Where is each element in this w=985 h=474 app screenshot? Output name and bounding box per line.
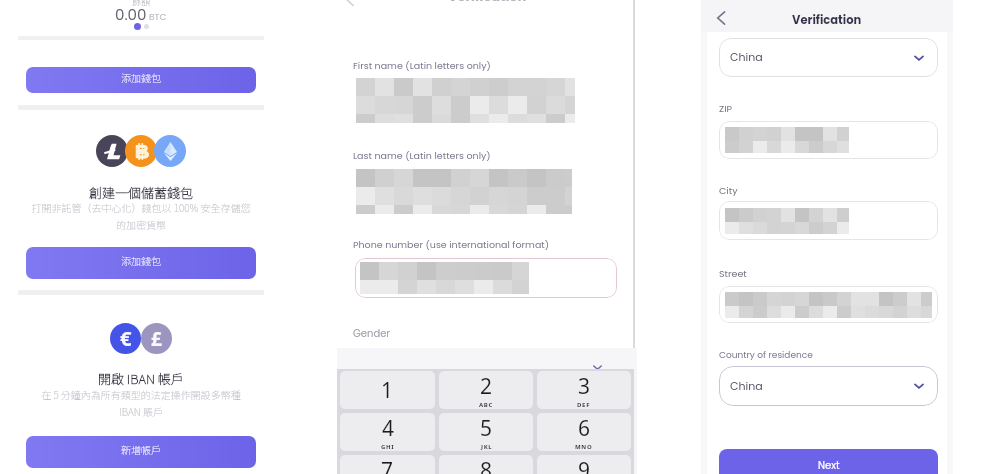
staticText: 開啟 IBAN 帳戶 bbox=[98, 369, 184, 388]
button[interactable]: China bbox=[719, 38, 938, 77]
staticText: Verification bbox=[792, 12, 862, 28]
button[interactable] bbox=[719, 121, 938, 159]
staticText: 2 bbox=[480, 372, 493, 401]
staticText: 5 bbox=[480, 414, 493, 443]
staticText: JKL bbox=[481, 443, 493, 451]
staticText: 4 bbox=[382, 414, 395, 443]
staticText: Street bbox=[719, 267, 747, 280]
staticText: 打開非託管（去中心化）錢包以 100% 安全存儲您 的加密貨幣 bbox=[18, 200, 264, 231]
staticText: China bbox=[730, 49, 763, 64]
staticText: 0.00 bbox=[115, 4, 147, 25]
button[interactable]: Next bbox=[719, 449, 938, 474]
staticText: China bbox=[730, 378, 763, 393]
staticText: 1 bbox=[381, 376, 394, 405]
button[interactable] bbox=[719, 201, 938, 240]
staticText: Gender bbox=[353, 326, 391, 340]
staticText: 添加錢包 bbox=[121, 253, 161, 267]
button[interactable]: 4 bbox=[340, 413, 435, 451]
staticText: MNO bbox=[575, 443, 593, 451]
staticText: 添加錢包 bbox=[121, 70, 161, 84]
staticText: Country of residence bbox=[719, 349, 813, 362]
staticText: 在 5 分鐘內為所有類型的法定操作開設多幣種 IBAN 賬戶 bbox=[18, 387, 264, 418]
staticText: ZIP bbox=[719, 102, 732, 115]
staticText: £ bbox=[151, 326, 162, 352]
staticText: 新增帳戶 bbox=[121, 442, 161, 456]
staticText: ABC bbox=[479, 401, 494, 409]
button[interactable]: 9 bbox=[537, 455, 631, 474]
staticText: Next bbox=[818, 458, 840, 472]
button[interactable]: 6 bbox=[537, 413, 631, 451]
button[interactable]: 3 bbox=[537, 371, 631, 409]
button[interactable]: 新增帳戶 bbox=[26, 436, 256, 468]
button[interactable]: 添加錢包 bbox=[26, 67, 256, 93]
staticText: 6 bbox=[578, 414, 591, 443]
button[interactable]: Back bbox=[339, 0, 361, 11]
staticText: Last name (Latin letters only) bbox=[353, 149, 491, 162]
staticText: 創建一個儲蓄錢包 bbox=[89, 183, 194, 202]
staticText: GHI bbox=[381, 443, 395, 451]
staticText: € bbox=[120, 325, 132, 352]
button[interactable]: Back bbox=[709, 6, 733, 30]
staticText: 餘額 bbox=[132, 0, 151, 8]
button[interactable]: 7 bbox=[340, 455, 435, 474]
staticText: Verification bbox=[448, 0, 527, 5]
button[interactable]: 5 bbox=[439, 413, 533, 451]
button[interactable]: 2 bbox=[439, 371, 533, 409]
staticText: 8 bbox=[480, 456, 493, 474]
staticText: City bbox=[719, 184, 738, 197]
staticText: Phone number (use international format) bbox=[353, 238, 550, 251]
staticText: DEF bbox=[577, 401, 591, 409]
button[interactable]: 添加錢包 bbox=[26, 247, 256, 279]
button[interactable]: China bbox=[719, 366, 938, 406]
staticText: First name (Latin letters only) bbox=[353, 59, 491, 72]
button[interactable] bbox=[719, 286, 938, 323]
staticText: BTC bbox=[149, 11, 167, 24]
button[interactable]: 8 bbox=[439, 455, 533, 474]
staticText: 9 bbox=[578, 456, 591, 474]
staticText: 7 bbox=[381, 456, 394, 474]
staticText: 3 bbox=[578, 372, 591, 401]
button[interactable] bbox=[355, 258, 617, 298]
button[interactable]: 1 bbox=[340, 371, 435, 409]
